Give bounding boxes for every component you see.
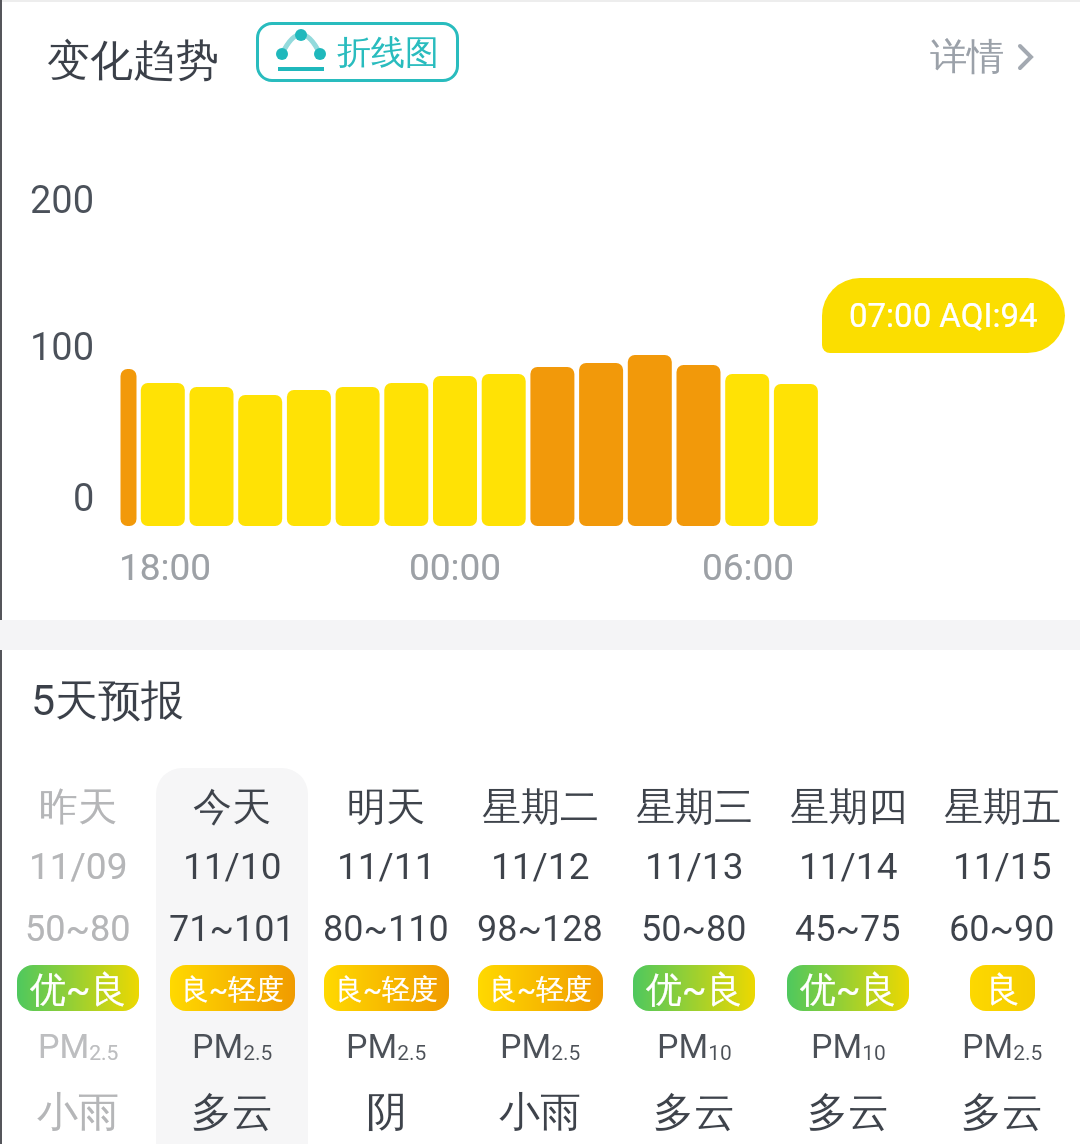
- staticText: PM10: [657, 1026, 732, 1066]
- staticText: 优~良: [800, 967, 897, 1012]
- staticText: 明天: [347, 782, 425, 831]
- button[interactable]: 星期五: [925, 768, 1079, 1144]
- staticText: 小雨: [37, 1087, 119, 1139]
- staticText: 良~轻度: [335, 972, 439, 1007]
- staticText: 小雨: [499, 1087, 581, 1139]
- staticText: PM2.5: [962, 1026, 1043, 1066]
- staticText: 11/13: [645, 845, 744, 888]
- staticText: 阴: [366, 1087, 407, 1139]
- staticText: 变化趋势: [47, 34, 219, 88]
- staticText: 昨天: [39, 782, 117, 831]
- button[interactable]: 折线图: [256, 22, 459, 82]
- staticText: 今天: [193, 782, 271, 831]
- staticText: 07:00 AQI:94: [849, 296, 1038, 335]
- staticText: 星期四: [790, 782, 907, 831]
- staticText: 优~良: [30, 967, 127, 1012]
- staticText: 11/12: [491, 845, 590, 888]
- staticText: 多云: [961, 1087, 1043, 1139]
- staticText: 60~90: [949, 908, 1055, 950]
- staticText: 星期三: [636, 782, 753, 831]
- staticText: 50~80: [641, 908, 747, 950]
- staticText: 11/14: [799, 845, 898, 888]
- staticText: 0: [73, 476, 95, 514]
- staticText: 98~128: [477, 908, 603, 950]
- staticText: 详情: [930, 33, 1004, 80]
- button[interactable]: 星期四: [771, 768, 925, 1144]
- staticText: 200: [30, 178, 95, 216]
- staticText: 45~75: [795, 908, 901, 950]
- staticText: PM2.5: [346, 1026, 427, 1066]
- staticText: 100: [30, 325, 95, 363]
- button[interactable]: 星期二: [463, 768, 617, 1144]
- staticText: 多云: [653, 1087, 735, 1139]
- staticText: 5天预报: [31, 674, 185, 728]
- staticText: 11/09: [29, 845, 128, 888]
- staticText: 多云: [191, 1087, 273, 1139]
- button[interactable]: 星期三: [617, 768, 771, 1144]
- staticText: 星期二: [482, 782, 599, 831]
- staticText: PM2.5: [500, 1026, 581, 1066]
- staticText: 优~良: [646, 967, 743, 1012]
- staticText: 良~轻度: [181, 972, 285, 1007]
- staticText: 良: [986, 968, 1020, 1011]
- staticText: PM2.5: [192, 1026, 273, 1066]
- staticText: PM2.5: [38, 1026, 119, 1066]
- staticText: 11/10: [183, 845, 282, 888]
- staticText: 折线图: [337, 31, 439, 74]
- button[interactable]: 昨天: [1, 768, 155, 1144]
- staticText: 星期五: [944, 782, 1061, 831]
- staticText: 80~110: [323, 908, 449, 950]
- staticText: 良~轻度: [489, 972, 593, 1007]
- staticText: 11/15: [953, 845, 1052, 888]
- staticText: 71~101: [169, 908, 295, 950]
- staticText: 00:00: [409, 546, 502, 586]
- staticText: PM10: [811, 1026, 886, 1066]
- button[interactable]: 详情: [930, 33, 1034, 80]
- staticText: 18:00: [119, 546, 212, 586]
- button[interactable]: 明天: [309, 768, 463, 1144]
- staticText: 06:00: [702, 546, 795, 586]
- staticText: 50~80: [25, 908, 131, 950]
- staticText: 11/11: [337, 845, 436, 888]
- button[interactable]: 今天: [155, 768, 309, 1144]
- staticText: 多云: [807, 1087, 889, 1139]
